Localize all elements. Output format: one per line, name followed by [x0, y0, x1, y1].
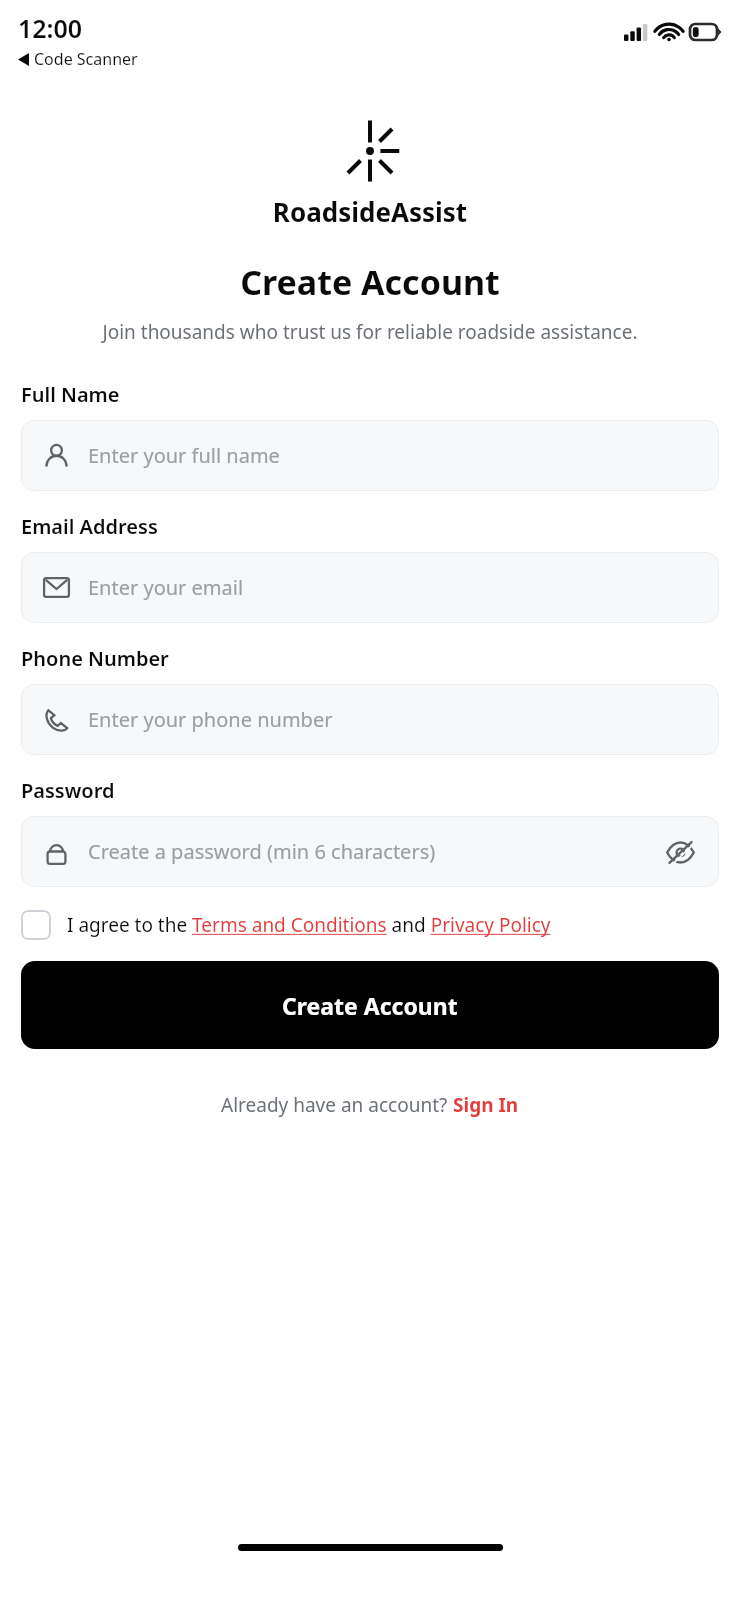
staticText: Code Scanner [34, 48, 138, 70]
button[interactable]: Enter your email [21, 552, 719, 623]
staticText: Join thousands who trust us for reliable… [44, 319, 696, 345]
staticText: Create a password (min 6 characters) [88, 838, 663, 865]
staticText: Full Name [21, 381, 120, 408]
staticText: Enter your full name [88, 442, 697, 469]
staticText: Phone Number [21, 645, 169, 672]
button[interactable]: Enter your full name [21, 420, 719, 491]
button[interactable]: Create Account [21, 961, 719, 1049]
staticText: Create Account [282, 990, 458, 1021]
staticText: Sign In [453, 1092, 519, 1118]
staticText: Create Account [0, 259, 740, 305]
button[interactable]: Already have an account? [21, 1092, 719, 1118]
button[interactable]: I agree to the Terms and Conditions and … [67, 912, 719, 938]
staticText: Enter your phone number [88, 706, 697, 733]
staticText: Already have an account? [221, 1092, 453, 1118]
staticText: Email Address [21, 513, 158, 540]
staticText: RoadsideAssist [0, 194, 740, 229]
staticText: Password [21, 777, 115, 804]
staticText: 12:00 [18, 11, 83, 45]
button[interactable]: Enter your phone number [21, 684, 719, 755]
button[interactable]: Create a password (min 6 characters) [21, 816, 719, 887]
button[interactable]: Toggle password visibility [663, 835, 697, 869]
button[interactable]: Agree to terms checkbox [21, 910, 51, 940]
staticText: Enter your email [88, 574, 697, 601]
